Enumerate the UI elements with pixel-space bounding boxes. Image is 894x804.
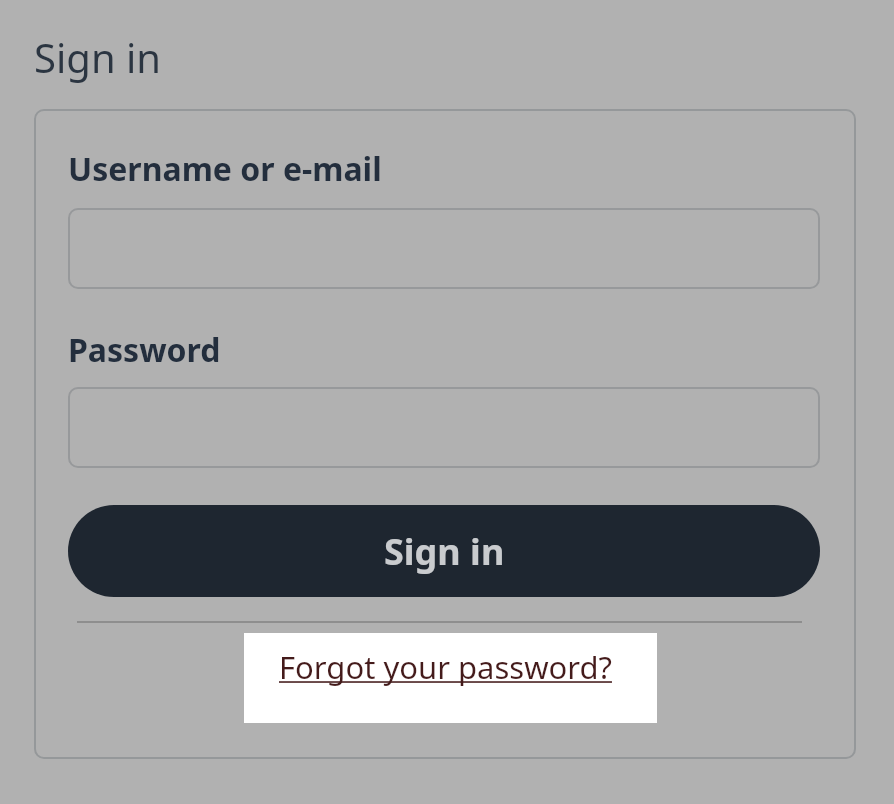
staticText: Sign in [384, 527, 505, 576]
staticText: Forgot your password? [279, 646, 612, 688]
button[interactable]: Forgot your password? [244, 633, 657, 723]
button[interactable] [68, 208, 820, 289]
button[interactable]: Sign in [68, 505, 820, 597]
staticText: Password [68, 328, 221, 372]
staticText: Sign in [34, 30, 162, 84]
staticText: Username or e-mail [68, 147, 382, 191]
button[interactable] [68, 387, 820, 468]
